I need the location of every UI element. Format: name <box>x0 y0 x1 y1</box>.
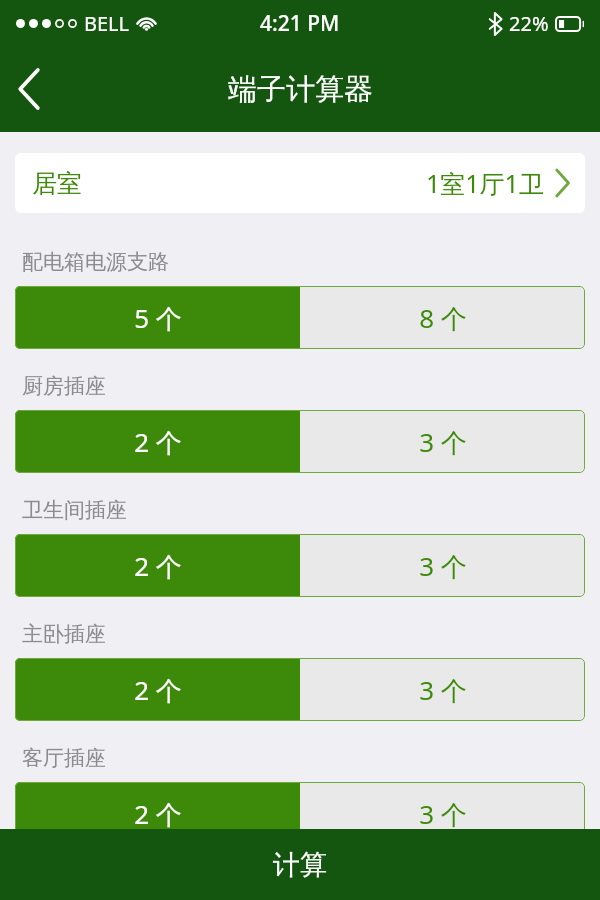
staticText: 客厅插座 <box>22 745 106 771</box>
button[interactable]: 5 个 <box>15 286 300 349</box>
staticText: 3 个 <box>419 796 467 832</box>
staticText: 配电箱电源支路 <box>22 249 169 275</box>
staticText: 3 个 <box>419 424 467 460</box>
staticText: 5 个 <box>134 300 182 336</box>
staticText: 3 个 <box>419 672 467 708</box>
staticText: 3 个 <box>419 548 467 584</box>
button[interactable]: 2 个 <box>15 658 300 721</box>
button[interactable]: Back <box>0 60 58 118</box>
button[interactable]: 2 个 <box>15 534 300 597</box>
button[interactable]: 2 个 <box>15 782 300 845</box>
staticText: 厨房插座 <box>22 373 106 399</box>
button[interactable]: 8 个 <box>300 286 585 349</box>
staticText: 22% <box>509 10 549 37</box>
button[interactable]: 计算 <box>0 829 600 900</box>
staticText: 2 个 <box>134 548 182 584</box>
staticText: 2 个 <box>134 796 182 832</box>
staticText: 主卧插座 <box>22 621 106 647</box>
staticText: 卫生间插座 <box>22 497 127 523</box>
staticText: 4:21 PM <box>260 9 340 38</box>
button[interactable]: 居室 <box>15 153 585 213</box>
staticText: 2 个 <box>134 424 182 460</box>
staticText: 计算 <box>273 848 327 882</box>
staticText: 1室1厅1卫 <box>426 166 544 200</box>
button[interactable]: 3 个 <box>300 534 585 597</box>
staticText: 2 个 <box>134 672 182 708</box>
button[interactable]: 3 个 <box>300 410 585 473</box>
staticText: 居室 <box>32 168 82 199</box>
staticText: 端子计算器 <box>228 71 373 108</box>
button[interactable]: 3 个 <box>300 658 585 721</box>
button[interactable]: 3 个 <box>300 782 585 845</box>
staticText: BELL <box>84 10 130 37</box>
staticText: 8 个 <box>419 300 467 336</box>
button[interactable]: 2 个 <box>15 410 300 473</box>
